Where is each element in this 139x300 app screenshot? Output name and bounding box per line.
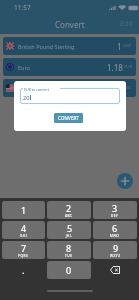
staticText: 1.38 bbox=[106, 83, 122, 94]
button[interactable]: CONVERT bbox=[54, 113, 83, 123]
staticText: 7 bbox=[21, 242, 27, 254]
staticText: 20 bbox=[23, 94, 30, 101]
button[interactable]: 8 bbox=[47, 241, 91, 259]
staticText: MNO bbox=[110, 234, 120, 238]
button[interactable]: 1 bbox=[2, 201, 45, 219]
button[interactable]: 3 bbox=[93, 201, 137, 219]
button[interactable]: 9 bbox=[93, 241, 137, 259]
staticText: PQRS bbox=[18, 254, 29, 258]
staticText: GHI bbox=[20, 234, 28, 238]
button[interactable]: Edit bbox=[114, 15, 139, 33]
button[interactable]: 2 bbox=[47, 201, 91, 219]
staticText: 1 bbox=[21, 204, 27, 216]
button[interactable]: 5 bbox=[47, 221, 91, 239]
staticText: WXYZ bbox=[110, 254, 121, 258]
staticText: United States Dollar bbox=[18, 85, 70, 92]
staticText: CONVERT bbox=[58, 115, 80, 121]
button[interactable]: 6 bbox=[93, 221, 137, 239]
staticText: . bbox=[22, 264, 25, 276]
staticText: 3 bbox=[112, 202, 118, 214]
staticText: 8 bbox=[66, 242, 72, 254]
staticText: Euro bbox=[18, 64, 30, 71]
staticText: USD bbox=[123, 85, 132, 91]
staticText: 5 bbox=[67, 222, 73, 234]
button[interactable]: 7 bbox=[2, 241, 45, 259]
button[interactable]: British Pound Sterling bbox=[3, 37, 136, 55]
button[interactable]: Decimal point bbox=[2, 261, 45, 279]
button[interactable]: Add currency bbox=[117, 173, 133, 189]
button[interactable]: Backspace bbox=[93, 261, 137, 279]
button[interactable]: United States Dollar bbox=[3, 79, 136, 97]
button[interactable]: 4 bbox=[2, 221, 45, 239]
staticText: ABC bbox=[65, 214, 73, 218]
staticText: 6 bbox=[112, 222, 118, 234]
staticText: EUR bbox=[124, 64, 132, 70]
staticText: Edit bbox=[120, 19, 133, 29]
staticText: 0 bbox=[66, 264, 72, 276]
staticText: JKL bbox=[66, 234, 73, 238]
button[interactable]: 0 bbox=[47, 261, 91, 279]
staticText: Convert bbox=[55, 19, 85, 30]
staticText: 1.18 bbox=[107, 62, 123, 73]
button[interactable]: Euro bbox=[3, 58, 136, 76]
staticText: EUR to convert bbox=[24, 87, 49, 92]
staticText: TUV bbox=[65, 254, 73, 258]
staticText: 11:57 bbox=[14, 3, 31, 12]
staticText: 2 bbox=[66, 202, 72, 214]
button[interactable]: 20 bbox=[20, 88, 120, 104]
staticText: 9 bbox=[113, 242, 119, 254]
staticText: British Pound Sterling bbox=[18, 43, 75, 50]
staticText: 4 bbox=[21, 222, 27, 234]
staticText: GBP bbox=[123, 43, 132, 49]
staticText: 1 bbox=[117, 41, 122, 52]
staticText: DEF bbox=[111, 214, 119, 218]
